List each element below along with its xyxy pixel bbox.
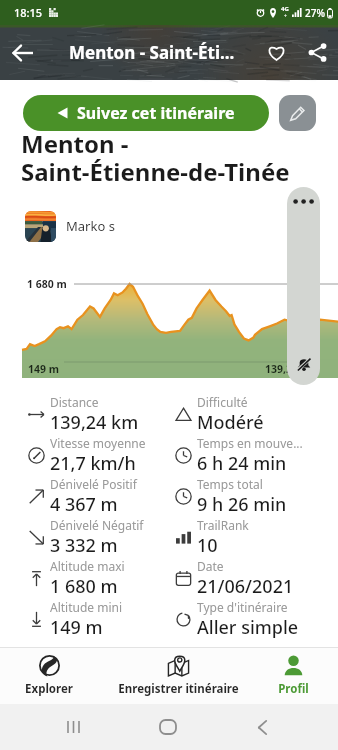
button[interactable]: Recents: [27, 704, 119, 750]
button[interactable]: Enregistrer itinéraire: [98, 648, 259, 704]
button[interactable]: Edit: [279, 95, 316, 131]
staticText: Suivez cet itinéraire: [77, 102, 235, 124]
staticText: Dénivelé Positif: [50, 476, 137, 492]
button[interactable]: Home: [122, 704, 214, 750]
button[interactable]: Type d'itinéraire: [169, 599, 338, 640]
staticText: 1 680 m: [50, 574, 118, 599]
staticText: Temps total: [197, 476, 263, 492]
button[interactable]: Distance: [22, 394, 169, 435]
button[interactable]: Profil: [259, 648, 327, 704]
button[interactable]: Difficulté: [169, 394, 338, 435]
staticText: Difficulté: [197, 394, 248, 410]
button[interactable]: Temps total: [169, 476, 338, 517]
staticText: 10: [197, 533, 218, 558]
staticText: 4 367 m: [50, 492, 118, 517]
button[interactable]: Explorer: [0, 648, 98, 704]
staticText: 139,24 km: [50, 410, 139, 435]
button[interactable]: Dénivelé Positif: [22, 476, 169, 517]
staticText: Type d'itinéraire: [197, 599, 288, 615]
staticText: Enregistrer itinéraire: [118, 681, 239, 697]
staticText: Marko s: [66, 217, 115, 235]
button[interactable]: Back: [216, 704, 308, 750]
staticText: +: [284, 13, 287, 20]
staticText: 149 m: [28, 362, 59, 376]
staticText: 3 332 m: [50, 533, 118, 558]
button[interactable]: Suivez cet itinéraire: [23, 95, 269, 131]
button[interactable]: Share: [296, 25, 338, 80]
button[interactable]: Altitude mini: [22, 599, 169, 640]
button[interactable]: Vitesse moyenne: [22, 435, 169, 476]
staticText: Distance: [50, 394, 99, 410]
staticText: 6 h 24 min: [197, 451, 287, 476]
button[interactable]: Altitude maxi: [22, 558, 169, 599]
staticText: 21/06/2021: [197, 574, 294, 599]
staticText: Altitude mini: [50, 599, 123, 615]
staticText: Temps en mouve...: [197, 435, 303, 451]
staticText: Altitude maxi: [50, 558, 125, 574]
staticText: Aller simple: [197, 615, 299, 640]
staticText: 27%: [305, 6, 325, 20]
button[interactable]: Date: [169, 558, 338, 599]
staticText: 21,7 km/h: [50, 451, 136, 476]
button[interactable]: Edge panel: [287, 187, 320, 385]
button[interactable]: Dénivelé Négatif: [22, 517, 169, 558]
button[interactable]: Back: [0, 25, 46, 80]
staticText: Vitesse moyenne: [50, 435, 146, 451]
button[interactable]: Temps en mouve...: [169, 435, 338, 476]
staticText: TrailRank: [197, 517, 249, 533]
staticText: Explorer: [25, 681, 73, 697]
staticText: Profil: [278, 681, 309, 697]
staticText: Menton - Saint-Éti...: [69, 41, 256, 64]
staticText: 18:15: [14, 5, 43, 20]
staticText: 1 680 m: [27, 277, 67, 291]
staticText: 139,24 km: [265, 362, 318, 376]
staticText: Dénivelé Négatif: [50, 517, 144, 533]
staticText: 4G: [281, 5, 289, 13]
staticText: Modéré: [197, 410, 264, 435]
button[interactable]: Marko s: [25, 210, 115, 242]
staticText: Date: [197, 558, 224, 574]
staticText: 149 m: [50, 615, 103, 640]
button[interactable]: Favorite: [256, 25, 296, 80]
staticText: 9 h 26 min: [197, 492, 287, 517]
staticText: Menton - Saint-Étienne-de-Tinée: [21, 127, 290, 188]
button[interactable]: TrailRank: [169, 517, 338, 558]
